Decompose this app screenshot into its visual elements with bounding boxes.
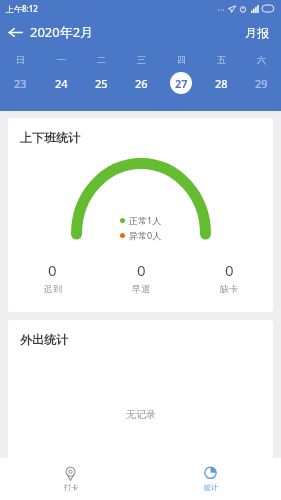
staticText: 28 xyxy=(215,76,228,91)
staticText: 二 xyxy=(97,54,106,65)
button[interactable]: 0 xyxy=(97,260,185,294)
staticText: 24 xyxy=(55,76,68,91)
button[interactable]: 统计 xyxy=(140,458,281,500)
button[interactable]: 26 xyxy=(121,68,161,98)
staticText: 月报 xyxy=(245,25,269,40)
button[interactable]: 24 xyxy=(41,68,81,98)
staticText: 27 xyxy=(175,76,188,91)
staticText: 正常1人 xyxy=(129,214,162,226)
staticText: 23 xyxy=(14,76,27,91)
staticText: 29 xyxy=(255,76,268,91)
button[interactable]: 27 xyxy=(161,68,201,98)
staticText: 缺卡 xyxy=(220,283,238,294)
button[interactable]: 打卡 xyxy=(0,458,140,500)
button[interactable]: 28 xyxy=(201,68,241,98)
button[interactable]: 25 xyxy=(81,68,121,98)
staticText: 四 xyxy=(177,54,186,65)
staticText: 无记录 xyxy=(126,408,156,421)
staticText: 统计 xyxy=(204,483,218,492)
staticText: 上下班统计 xyxy=(20,130,80,145)
other: 统计 xyxy=(203,466,218,481)
staticText: 三 xyxy=(137,54,146,65)
other: 打卡 xyxy=(63,466,78,481)
staticText: 异常0人 xyxy=(129,229,162,241)
button[interactable]: 0 xyxy=(185,260,273,294)
button[interactable]: 23 xyxy=(0,68,41,98)
staticText: 早退 xyxy=(132,283,150,294)
staticText: 外出统计 xyxy=(20,332,68,347)
button[interactable]: 月报 xyxy=(233,21,281,44)
staticText: 日 xyxy=(16,54,25,65)
staticText: 2020年2月 xyxy=(30,23,94,41)
staticText: 一 xyxy=(57,54,66,65)
staticText: 打卡 xyxy=(64,483,78,492)
button[interactable]: Back xyxy=(0,17,30,47)
staticText: 26 xyxy=(135,76,148,91)
staticText: 0 xyxy=(137,260,146,280)
staticText: 五 xyxy=(217,54,226,65)
staticText: 25 xyxy=(95,76,108,91)
staticText: 0 xyxy=(225,260,234,280)
button[interactable]: 29 xyxy=(241,68,281,98)
staticText: 六 xyxy=(257,54,266,65)
staticText: 上午8:12 xyxy=(6,3,38,14)
staticText: 0 xyxy=(48,260,57,280)
staticText: 迟到 xyxy=(44,283,62,294)
button[interactable]: 0 xyxy=(8,260,97,294)
